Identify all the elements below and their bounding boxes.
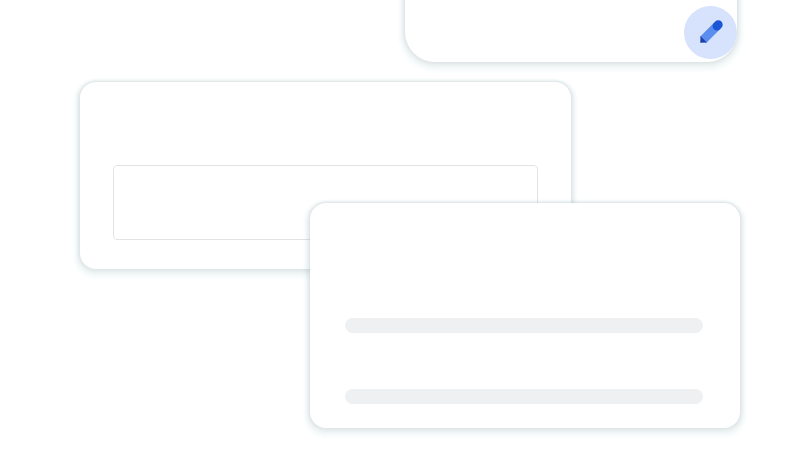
button[interactable]: Edit	[684, 6, 737, 59]
button[interactable]	[310, 203, 740, 428]
button[interactable]	[113, 165, 538, 240]
button[interactable]	[405, 0, 737, 62]
button[interactable]	[80, 82, 571, 269]
